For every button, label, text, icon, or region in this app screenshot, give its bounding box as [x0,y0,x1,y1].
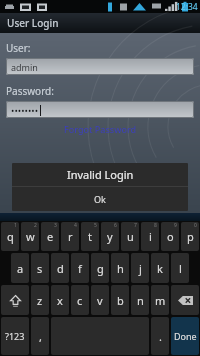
staticText: y [107,229,113,244]
button[interactable]: l [171,253,189,283]
staticText: x [57,293,63,308]
button[interactable]: admin [6,58,194,75]
staticText: j [139,261,142,276]
staticText: t [88,229,92,244]
button[interactable]: Done [171,317,199,355]
staticText: Ok [94,193,106,205]
button[interactable]: s [31,253,49,283]
staticText: v [97,293,103,308]
button[interactable]: ?123 [1,317,29,355]
button[interactable]: q [1,222,19,251]
button[interactable]: b [111,285,129,315]
staticText: h [117,261,124,276]
staticText: m [155,293,166,308]
button[interactable]: u [121,222,139,251]
staticText: n [137,293,144,308]
button[interactable]: Ok [12,187,188,211]
staticText: b [117,293,124,308]
button[interactable]: r [61,222,79,251]
staticText: s [37,261,43,276]
staticText: l [179,261,182,276]
staticText: g [97,261,104,276]
staticText: Password: [6,84,54,98]
staticText: 5 [94,222,97,229]
staticText: •••••••• [11,104,39,116]
staticText: Done [174,330,197,342]
staticText: 6 [114,222,117,229]
button[interactable]: Shift [1,285,29,315]
staticText: c [77,293,83,308]
button[interactable]: i [141,222,159,251]
staticText: 12:34 [176,1,198,13]
button[interactable]: f [71,253,89,283]
staticText: ?123 [5,330,25,342]
staticText: z [37,293,43,308]
staticText: a [17,261,24,276]
staticText: p [187,229,194,244]
button[interactable]: y [101,222,119,251]
staticText: Invalid Login [67,167,134,182]
staticText: admin [11,61,38,73]
staticText: 0 [194,222,197,229]
staticText: 2 [34,222,37,229]
button[interactable]: z [31,285,49,315]
staticText: w [26,229,35,244]
staticText: i [149,229,152,244]
staticText: 1 [14,222,17,229]
button[interactable]: , [31,317,49,355]
button[interactable]: h [111,253,129,283]
button[interactable]: x [51,285,69,315]
button[interactable]: Delete [171,285,199,315]
staticText: e [47,229,54,244]
button[interactable]: j [131,253,149,283]
staticText: Forgot Password [64,123,137,135]
button[interactable]: k [151,253,169,283]
staticText: d [57,261,64,276]
button[interactable]: c [71,285,89,315]
staticText: , [39,329,42,344]
button[interactable]: v [91,285,109,315]
button[interactable]: p [181,222,199,251]
button[interactable]: w [21,222,39,251]
button[interactable]: n [131,285,149,315]
button[interactable]: o [161,222,179,251]
button[interactable]: d [51,253,69,283]
staticText: o [167,229,174,244]
button[interactable]: g [91,253,109,283]
button[interactable]: a [11,253,29,283]
staticText: k [157,261,163,276]
staticText: 4 [74,222,77,229]
staticText: . [159,329,162,344]
staticText: 8 [154,222,157,229]
button[interactable]: . [151,317,169,355]
button[interactable]: m [151,285,169,315]
staticText: User: [6,41,31,55]
button[interactable]: Forgot Password [6,123,194,135]
staticText: User Login [7,16,59,30]
button[interactable]: •••••••• [6,101,194,118]
staticText: u [127,229,134,244]
staticText: q [7,229,14,244]
staticText: r [68,229,73,244]
staticText: 3 [54,222,57,229]
button[interactable]: t [81,222,99,251]
staticText: 9 [174,222,177,229]
button[interactable]: e [41,222,59,251]
staticText: 7 [134,222,137,229]
staticText: f [78,261,82,276]
